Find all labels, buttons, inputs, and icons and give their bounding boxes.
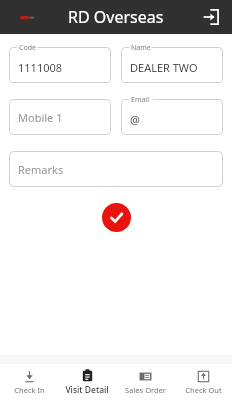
staticText: DEALER TWO (130, 60, 198, 75)
button[interactable]: Submit (102, 203, 131, 232)
staticText: Mobile 1 (18, 110, 63, 125)
staticText: Email (131, 95, 149, 105)
button[interactable]: Sales Order (116, 368, 174, 397)
button[interactable]: @ (121, 99, 223, 135)
staticText: @ (130, 112, 140, 127)
button[interactable]: Mobile 1 (9, 99, 111, 135)
button[interactable]: Visit Detail (58, 367, 116, 398)
button[interactable]: Logout (198, 4, 224, 30)
button[interactable]: DEALER TWO (121, 47, 223, 83)
staticText: Remarks (18, 162, 64, 177)
staticText: Check Out (185, 385, 222, 395)
staticText: Code (19, 43, 36, 53)
button[interactable]: Check Out (174, 368, 232, 397)
button[interactable]: Check In (0, 368, 58, 397)
staticText: Visit Detail (65, 384, 109, 396)
staticText: 1111008 (18, 60, 63, 75)
staticText: Name (131, 43, 151, 53)
button[interactable]: 1111008 (9, 47, 111, 83)
staticText: RD Overseas (68, 6, 164, 28)
staticText: Check In (14, 385, 45, 395)
staticText: Sales Order (125, 385, 166, 395)
button[interactable]: Remarks (9, 151, 223, 187)
